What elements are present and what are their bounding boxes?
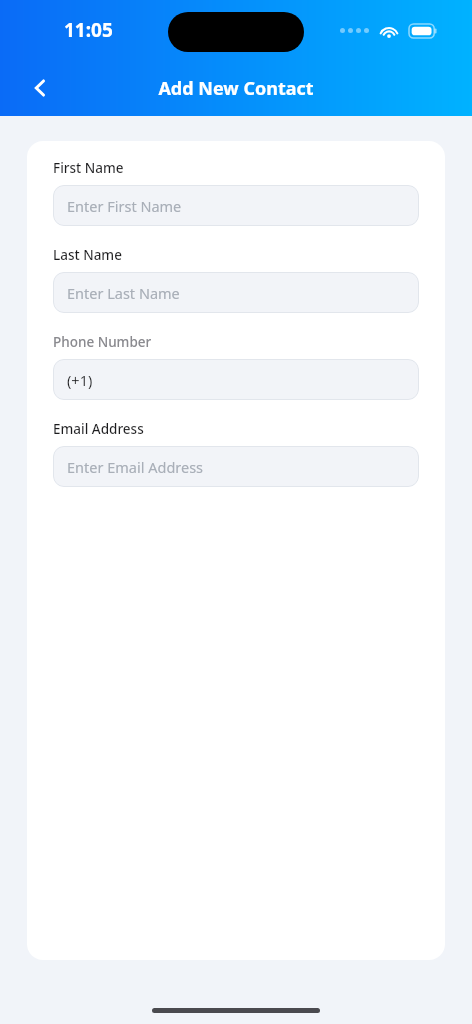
- staticText: Email Address: [53, 420, 144, 438]
- staticText: 11:05: [64, 17, 113, 43]
- button[interactable]: (+1): [53, 359, 419, 400]
- staticText: Enter Last Name: [67, 283, 180, 303]
- staticText: Last Name: [53, 246, 122, 264]
- staticText: Add New Contact: [158, 76, 314, 101]
- staticText: First Name: [53, 159, 124, 177]
- staticText: (+1): [67, 370, 93, 390]
- button[interactable]: Enter Email Address: [53, 446, 419, 487]
- staticText: Phone Number: [53, 333, 152, 351]
- button[interactable]: Enter First Name: [53, 185, 419, 226]
- button[interactable]: Enter Last Name: [53, 272, 419, 313]
- button[interactable]: Back: [16, 64, 64, 112]
- staticText: Enter First Name: [67, 196, 182, 216]
- staticText: Enter Email Address: [67, 457, 204, 477]
